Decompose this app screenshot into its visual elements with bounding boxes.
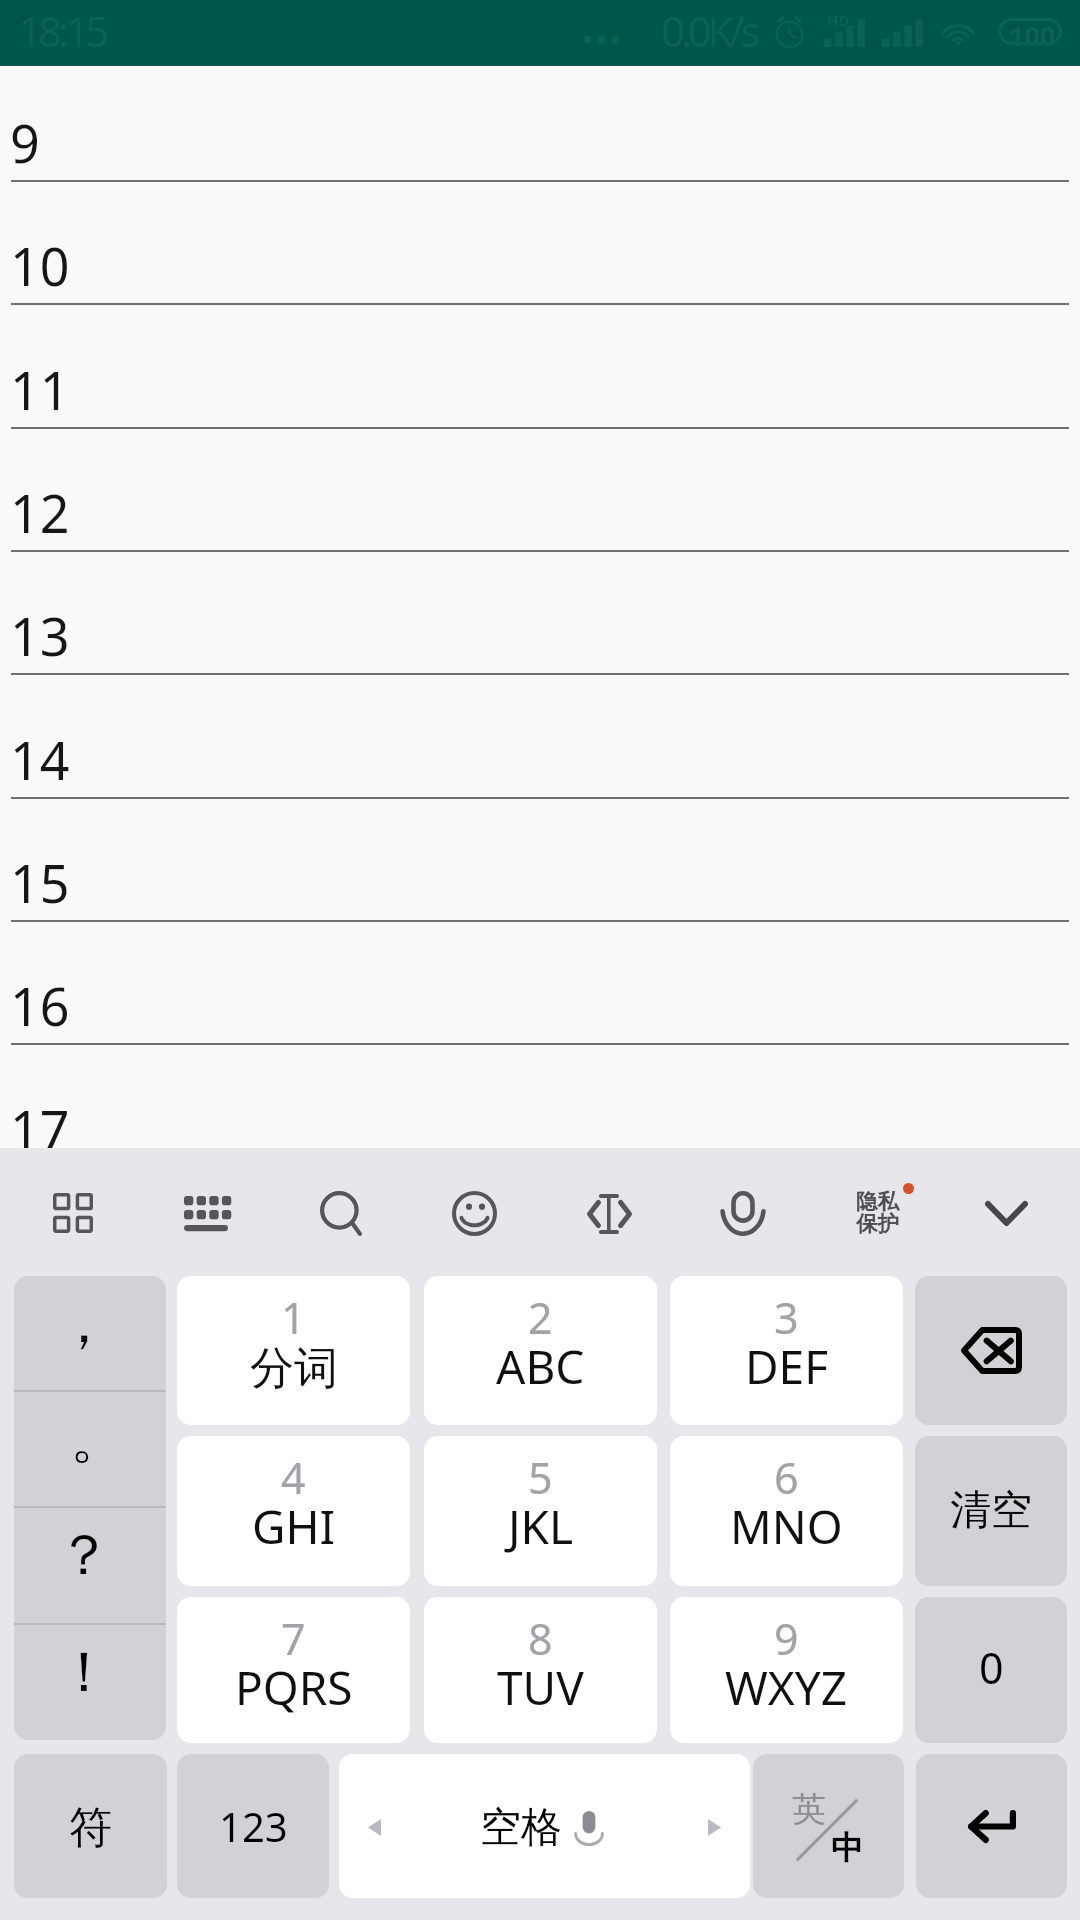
button[interactable]: 。 (14, 1392, 166, 1506)
button[interactable]: 空格 (339, 1754, 750, 1898)
staticText: 6 (774, 1448, 799, 1507)
staticText: 3 (774, 1288, 799, 1347)
staticText: ， (56, 1288, 112, 1359)
button[interactable]: 7 (177, 1597, 410, 1743)
staticText: TUV (497, 1656, 584, 1719)
staticText: 隐私 (856, 1188, 899, 1215)
staticText: 2 (528, 1288, 553, 1347)
button[interactable]: 16 (0, 920, 1080, 1043)
button[interactable]: 10 (0, 180, 1080, 303)
button[interactable]: Backspace (915, 1276, 1067, 1425)
staticText: ？ (56, 1520, 112, 1591)
button[interactable]: Move cursor (553, 1158, 665, 1270)
staticText: 清空 (950, 1485, 1032, 1537)
button[interactable]: 1 (177, 1276, 410, 1425)
staticText: 14 (10, 724, 70, 795)
button[interactable]: 13 (0, 550, 1080, 673)
button[interactable]: ？ (14, 1508, 166, 1623)
staticText: ！ (56, 1637, 112, 1708)
button[interactable]: Voice input (687, 1157, 799, 1269)
staticText: 17 (10, 1093, 70, 1164)
button[interactable]: ， (14, 1276, 166, 1390)
button[interactable]: 14 (0, 674, 1080, 797)
staticText: 1 (281, 1288, 306, 1347)
staticText: 5 (528, 1448, 553, 1507)
button[interactable]: 123 (177, 1754, 329, 1898)
button[interactable]: 5 (424, 1436, 657, 1586)
staticText: 0 (979, 1638, 1004, 1697)
staticText: 4 (281, 1448, 306, 1507)
staticText: MNO (730, 1495, 843, 1558)
button[interactable]: Panels (17, 1157, 129, 1269)
staticText: 123 (219, 1799, 288, 1853)
staticText: 保护 (856, 1210, 899, 1237)
button[interactable]: ！ (14, 1625, 166, 1740)
staticText: 分词 (250, 1341, 338, 1396)
button[interactable]: 12 (0, 427, 1080, 550)
staticText: HD (827, 10, 850, 30)
button[interactable]: Enter (916, 1754, 1067, 1898)
button[interactable]: 清空 (915, 1436, 1067, 1586)
button[interactable]: 3 (670, 1276, 903, 1425)
staticText: 。 (70, 1403, 126, 1474)
staticText: 8 (528, 1609, 553, 1668)
staticText: 符 (69, 1801, 112, 1855)
button[interactable]: Search (285, 1157, 397, 1269)
staticText: 12 (10, 477, 70, 548)
staticText: WXYZ (725, 1656, 848, 1719)
button[interactable]: 17 (0, 1043, 1080, 1166)
staticText: GHI (252, 1495, 336, 1558)
staticText: JKL (508, 1495, 574, 1558)
staticText: ABC (496, 1335, 585, 1398)
staticText: 13 (10, 600, 70, 671)
staticText: DEF (745, 1335, 829, 1398)
button[interactable]: Keyboard (150, 1157, 262, 1269)
staticText: 中 (831, 1828, 863, 1868)
staticText: 10 (10, 230, 70, 301)
button[interactable]: 2 (424, 1276, 657, 1425)
button[interactable]: 9 (670, 1597, 903, 1743)
staticText: 英 (792, 1788, 826, 1831)
button[interactable]: 6 (670, 1436, 903, 1586)
staticText: 9 (774, 1609, 799, 1668)
staticText: 7 (281, 1609, 306, 1668)
staticText: 空格 (480, 1802, 562, 1854)
staticText: 15 (10, 847, 70, 918)
button[interactable]: Hide keyboard (950, 1157, 1062, 1269)
staticText: 100 (1009, 17, 1056, 54)
button[interactable]: Switch language (753, 1754, 904, 1898)
staticText: 11 (10, 354, 70, 425)
staticText: PQRS (235, 1656, 353, 1719)
button[interactable]: 符 (14, 1754, 167, 1898)
button[interactable]: 15 (0, 797, 1080, 920)
button[interactable]: 8 (424, 1597, 657, 1743)
button[interactable]: Privacy protection (822, 1157, 942, 1269)
button[interactable]: 0 (915, 1597, 1067, 1743)
button[interactable]: Emoji (418, 1157, 530, 1269)
staticText: 9 (10, 107, 40, 178)
staticText: 18:15 (18, 2, 106, 59)
button[interactable]: 11 (0, 304, 1080, 427)
button[interactable]: 9 (0, 57, 1080, 180)
staticText: 0.0K/s (661, 2, 757, 59)
button[interactable]: 4 (177, 1436, 410, 1586)
staticText: 16 (10, 970, 70, 1041)
